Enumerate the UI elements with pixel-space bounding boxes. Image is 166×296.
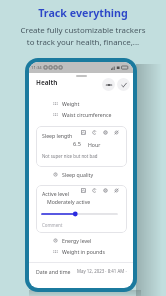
button[interactable]: Sleep quality <box>29 169 133 180</box>
staticText: Track everything <box>0 6 166 21</box>
button[interactable]: Disable <box>113 187 120 194</box>
staticText: Comment <box>42 222 63 228</box>
staticText: May 12, 2023 · 8:41 AM · <box>77 268 127 274</box>
staticText: Hour <box>88 141 101 148</box>
button[interactable]: History <box>91 187 98 194</box>
button[interactable]: Weight in pounds <box>29 246 133 257</box>
button[interactable]: Preview <box>102 78 115 91</box>
staticText: Not super nice but not bad <box>42 153 98 159</box>
staticText: Waist circumference <box>62 111 112 118</box>
staticText: Create fully customizable trackers to tr… <box>0 25 166 47</box>
button[interactable]: History <box>91 129 98 136</box>
staticText: Sleep quality <box>62 171 94 178</box>
button[interactable]: Waist circumference <box>29 109 133 120</box>
button[interactable]: Energy level <box>29 235 133 246</box>
button[interactable]: Weight <box>29 98 133 109</box>
button[interactable]: Settings <box>102 129 109 136</box>
button[interactable]: Disable <box>113 129 120 136</box>
button[interactable] <box>36 185 127 233</box>
staticText: Active level <box>42 190 69 197</box>
button[interactable]: Note <box>80 129 87 136</box>
staticText: Weight <box>62 100 80 107</box>
button[interactable] <box>36 126 127 167</box>
button[interactable]: Save <box>117 78 130 91</box>
staticText: Weight in pounds <box>62 248 105 255</box>
staticText: Health <box>36 78 58 87</box>
staticText: Moderately active <box>47 198 91 205</box>
staticText: 6.5 <box>73 140 81 148</box>
button[interactable]: Settings <box>102 187 109 194</box>
button[interactable]: Date and time <box>29 260 133 282</box>
staticText: Sleep length <box>42 132 73 139</box>
button[interactable]: Note <box>80 187 87 194</box>
staticText: Date and time <box>36 268 71 275</box>
staticText: Energy level <box>62 237 92 244</box>
staticText: 11:34 <box>31 65 42 71</box>
